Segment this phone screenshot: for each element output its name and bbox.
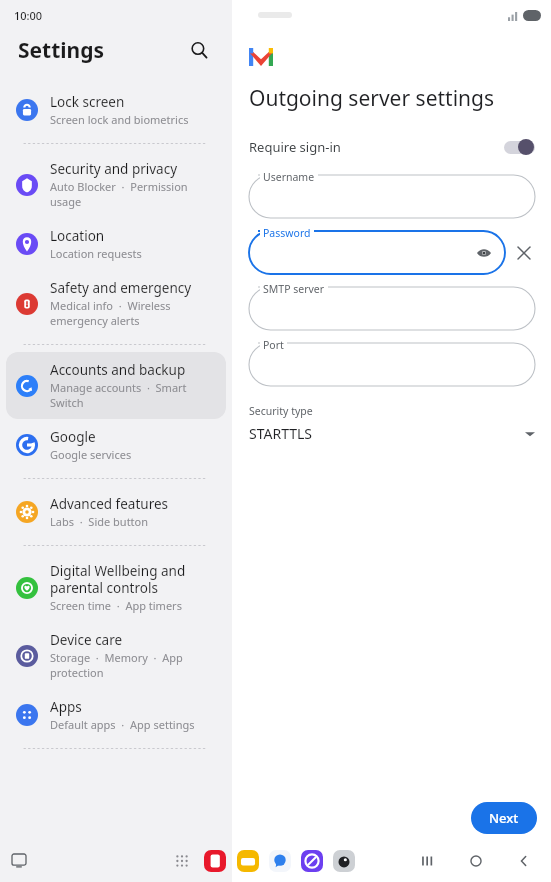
staticText: Auto Blocker · Permission usage (50, 179, 216, 209)
staticText: Apps (50, 698, 82, 716)
staticText: Google services (50, 447, 132, 462)
button[interactable]: home (463, 848, 489, 874)
staticText: Screen time · App timers (50, 598, 182, 613)
staticText: Require sign-in (249, 138, 341, 156)
button[interactable]: App 3 (300, 849, 324, 873)
staticText: 10:00 (14, 8, 43, 23)
button[interactable]: Safety and emergency (6, 270, 226, 337)
button[interactable]: Show password (473, 242, 495, 264)
button[interactable]: Next (471, 802, 537, 834)
staticText: Location requests (50, 246, 142, 261)
staticText: Lock screen (50, 93, 125, 111)
staticText: Username (263, 170, 315, 184)
button[interactable]: Require sign-in toggle (504, 139, 535, 155)
staticText: Storage · Memory · App protection (50, 650, 216, 680)
button[interactable]: App 1 (236, 849, 260, 873)
button[interactable]: Advanced features (6, 486, 226, 538)
button[interactable]: Location (6, 218, 226, 270)
button[interactable]: App 2 (268, 849, 292, 873)
button[interactable]: Digital Wellbeing and parental controls (6, 553, 226, 622)
staticText: Manage accounts · Smart Switch (50, 380, 216, 410)
button[interactable]: back (511, 848, 537, 874)
button[interactable]: Security type (249, 404, 535, 443)
staticText: Port (263, 338, 284, 352)
staticText: Security and privacy (50, 160, 178, 178)
button[interactable]: Require sign-in (249, 133, 535, 161)
staticText: Security type (249, 404, 313, 418)
button[interactable]: Security and privacy (6, 151, 226, 218)
staticText: Digital Wellbeing and parental controls (50, 562, 216, 597)
staticText: Safety and emergency (50, 279, 192, 297)
button[interactable]: Password (249, 231, 505, 274)
button[interactable]: All apps (169, 848, 195, 874)
staticText: Default apps · App settings (50, 717, 195, 732)
button[interactable]: SMTP server (249, 287, 535, 330)
button[interactable]: Apps (6, 689, 226, 741)
staticText: Device care (50, 631, 123, 649)
staticText: Password (263, 226, 311, 240)
staticText: Next (489, 809, 519, 827)
button[interactable]: App 0 (203, 849, 227, 873)
staticText: Outgoing server settings (249, 84, 495, 113)
button[interactable]: Accounts and backup (6, 352, 226, 419)
staticText: Location (50, 227, 105, 245)
button[interactable]: Device care (6, 622, 226, 689)
staticText: Accounts and backup (50, 361, 186, 379)
staticText: Google (50, 428, 96, 446)
staticText: Settings (18, 36, 105, 65)
staticText: Screen lock and biometrics (50, 112, 189, 127)
button[interactable]: Google (6, 419, 226, 471)
staticText: Labs · Side button (50, 514, 149, 529)
button[interactable]: Search (184, 35, 214, 65)
staticText: Medical info · Wireless emergency alerts (50, 298, 216, 328)
button[interactable]: Clear password (513, 242, 535, 264)
staticText: STARTTLS (249, 424, 313, 443)
button[interactable]: Username (249, 175, 535, 218)
staticText: Advanced features (50, 495, 169, 513)
button[interactable]: Lock screen (6, 84, 226, 136)
button[interactable]: App 4 (332, 849, 356, 873)
button[interactable]: recents (415, 848, 441, 874)
staticText: SMTP server (263, 282, 325, 296)
button[interactable]: Recent apps panel (6, 848, 32, 874)
button[interactable]: Port (249, 343, 535, 386)
